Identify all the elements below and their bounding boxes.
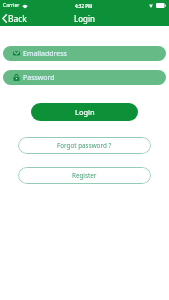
button[interactable]: Login	[31, 103, 138, 121]
staticText: Register	[72, 171, 97, 180]
button[interactable]: Forgot password ?	[18, 137, 151, 154]
button[interactable]: Back	[0, 11, 35, 26]
button[interactable]: Register	[18, 167, 151, 184]
staticText: Login	[75, 107, 95, 117]
button[interactable]: Emailaddress	[3, 46, 166, 61]
staticText: Back	[8, 13, 27, 24]
staticText: 4:32 PM	[75, 3, 93, 9]
button[interactable]: Password	[3, 70, 166, 85]
staticText: Forgot password ?	[57, 141, 112, 150]
staticText: Login	[74, 13, 95, 24]
staticText: Carrier	[3, 2, 20, 9]
staticText: Password	[23, 73, 55, 83]
staticText: Emailaddress	[23, 49, 67, 59]
